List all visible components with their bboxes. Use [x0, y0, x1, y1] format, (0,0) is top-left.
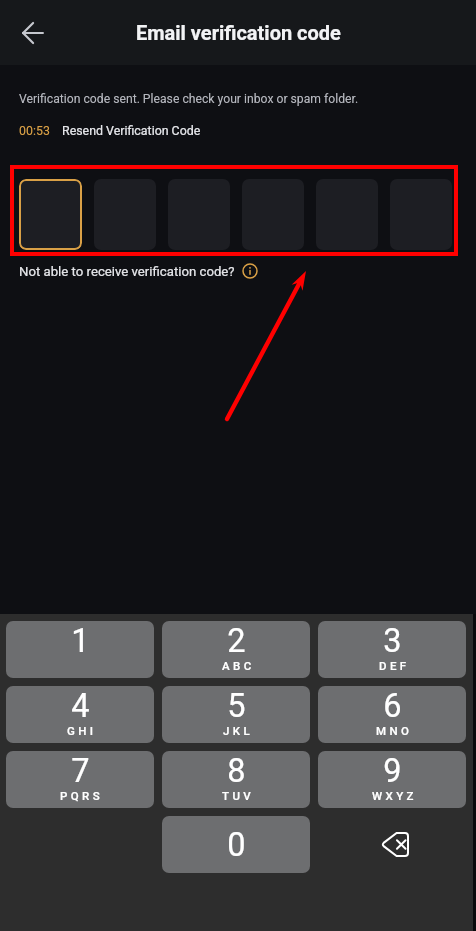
staticText: DEF: [379, 659, 410, 672]
button[interactable]: [19, 179, 82, 250]
staticText: Verification code sent. Please check you…: [19, 92, 359, 106]
button[interactable]: 5: [162, 686, 310, 743]
button[interactable]: Backspace: [318, 816, 466, 873]
staticText: 6: [383, 687, 402, 725]
staticText: ABC: [222, 659, 255, 672]
staticText: Resend Verification Code: [62, 123, 201, 138]
staticText: 9: [383, 752, 402, 790]
staticText: WXYZ: [372, 789, 417, 802]
button[interactable]: 7: [6, 751, 154, 808]
button[interactable]: 8: [162, 751, 310, 808]
staticText: MNO: [376, 724, 413, 737]
staticText: 4: [71, 687, 90, 725]
button[interactable]: Not able to receive verification code?: [19, 263, 258, 279]
staticText: TUV: [222, 789, 255, 802]
button[interactable]: Back: [11, 11, 55, 55]
staticText: 00:53: [19, 123, 50, 138]
staticText: JKL: [223, 724, 254, 737]
staticText: GHI: [67, 724, 97, 737]
staticText: 3: [383, 622, 402, 660]
button[interactable]: Resend Verification Code: [62, 123, 201, 138]
staticText: 2: [227, 622, 246, 660]
staticText: 1: [71, 622, 90, 660]
button[interactable]: 0: [162, 816, 310, 873]
button[interactable]: 3: [318, 621, 466, 678]
button[interactable]: 2: [162, 621, 310, 678]
staticText: 0: [227, 826, 246, 864]
button[interactable]: 1: [6, 621, 154, 678]
button[interactable]: 9: [318, 751, 466, 808]
button[interactable]: 4: [6, 686, 154, 743]
staticText: 8: [227, 752, 246, 790]
staticText: 7: [71, 752, 90, 790]
staticText: Not able to receive verification code?: [19, 264, 235, 279]
staticText: Email verification code: [136, 21, 341, 44]
button[interactable]: 6: [318, 686, 466, 743]
staticText: 5: [227, 687, 246, 725]
staticText: PQRS: [60, 789, 104, 802]
